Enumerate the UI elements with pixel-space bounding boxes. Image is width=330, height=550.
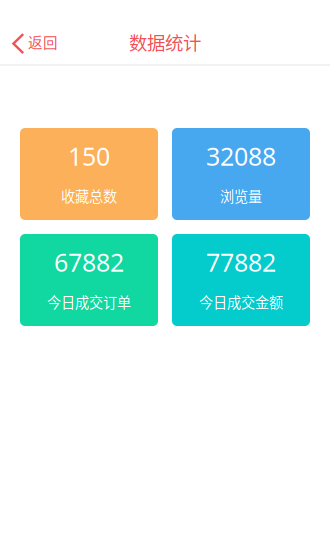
staticText: 数据统计 [129, 29, 201, 55]
staticText: 77882 [206, 245, 276, 279]
staticText: 收藏总数 [61, 185, 117, 206]
staticText: 浏览量 [220, 185, 262, 206]
staticText: 32088 [206, 139, 276, 173]
button[interactable]: 150 [20, 128, 158, 220]
staticText: 今日成交订单 [47, 291, 131, 312]
button[interactable]: 77882 [172, 234, 310, 326]
staticText: 67882 [54, 245, 124, 279]
staticText: 返回 [28, 31, 58, 52]
button[interactable]: 67882 [20, 234, 158, 326]
button[interactable]: 返回 [0, 20, 72, 64]
staticText: 今日成交金额 [199, 291, 283, 312]
button[interactable]: 32088 [172, 128, 310, 220]
staticText: 150 [68, 139, 110, 173]
